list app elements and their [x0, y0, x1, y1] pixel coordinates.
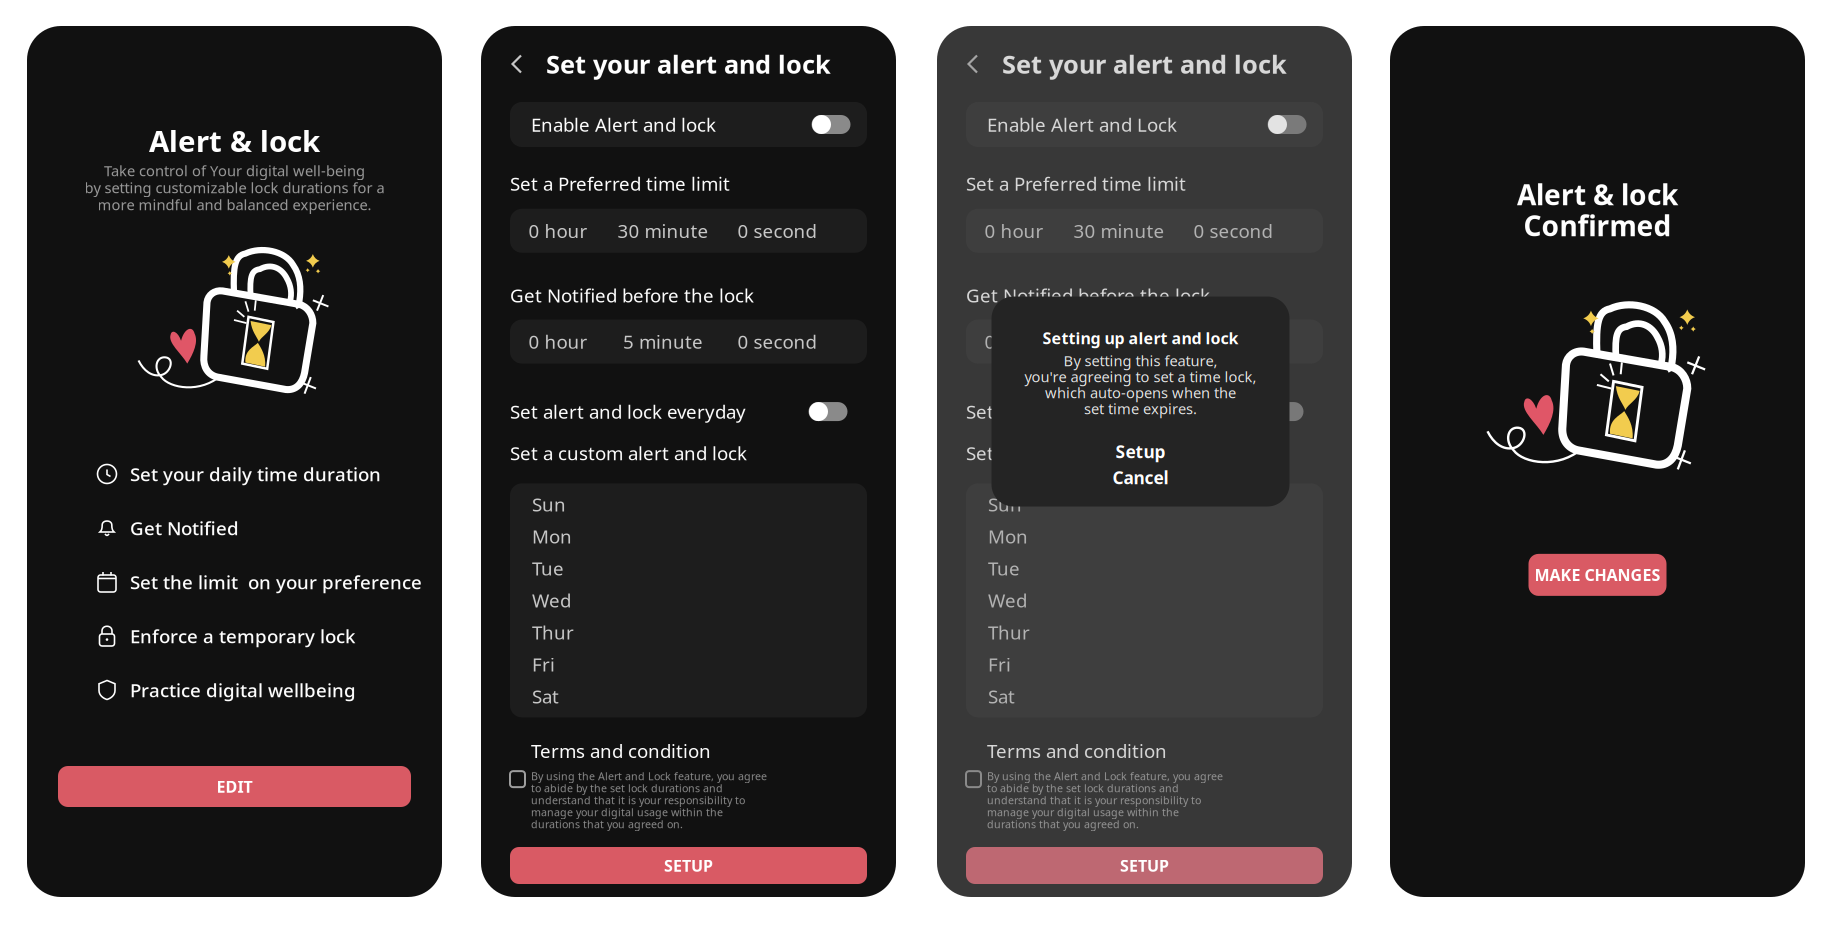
button[interactable]: Accept terms: [510, 770, 531, 787]
button[interactable]: Sun: [510, 488, 867, 520]
button[interactable]: Setup: [991, 440, 1289, 462]
staticText: By using the Alert and Lock feature, you…: [531, 769, 767, 783]
staticText: By setting this feature,: [1063, 351, 1217, 370]
staticText: by setting customizable lock durations f…: [84, 178, 384, 197]
staticText: Mon: [988, 524, 1028, 549]
staticText: Confirmed: [1523, 207, 1671, 244]
staticText: understand that it is your responsibilit…: [987, 793, 1201, 807]
staticText: Get Notified before the lock: [510, 283, 754, 308]
staticText: Tue: [988, 556, 1020, 581]
staticText: Thur: [988, 620, 1030, 645]
staticText: 0 hour: [528, 218, 587, 243]
staticText: SETUP: [1120, 855, 1169, 876]
staticText: Get Notified: [130, 516, 239, 540]
staticText: Take control of Your digital well-being: [104, 161, 365, 180]
staticText: 5 minute: [1079, 329, 1159, 354]
button[interactable]: Set the limit on your preference: [96, 555, 428, 609]
staticText: Practice digital wellbeing: [130, 678, 356, 702]
staticText: manage your digital usage within the: [987, 805, 1179, 819]
staticText: durations that you agreed on.: [987, 817, 1139, 831]
staticText: more mindful and balanced experience.: [97, 195, 371, 214]
staticText: Set a custom alert and lock: [510, 441, 747, 465]
staticText: Set alert and lock everyday: [510, 399, 746, 424]
button[interactable]: Wed: [966, 584, 1323, 616]
button[interactable]: Back: [956, 43, 989, 84]
staticText: manage your digital usage within the: [531, 805, 723, 819]
staticText: Mon: [532, 524, 572, 549]
button[interactable]: Tue: [966, 552, 1323, 584]
button[interactable]: Set your daily time duration: [96, 447, 428, 501]
staticText: Sun: [532, 492, 566, 517]
staticText: Enable Alert and Lock: [987, 112, 1177, 137]
staticText: Sun: [988, 492, 1022, 517]
staticText: Alert & lock: [1517, 176, 1678, 213]
staticText: Fri: [532, 652, 555, 677]
staticText: set time expires.: [1084, 399, 1197, 418]
staticText: 30 minute: [1073, 218, 1164, 243]
staticText: Set a custom alert and lock: [966, 441, 1203, 465]
button[interactable]: Practice digital wellbeing: [96, 663, 428, 717]
button[interactable]: Toggle: [803, 399, 853, 425]
button[interactable]: Get Notified: [96, 501, 428, 555]
button[interactable]: Cancel: [991, 466, 1289, 488]
staticText: Terms and condition: [531, 738, 711, 763]
staticText: Sat: [988, 684, 1015, 709]
staticText: Set your alert and lock: [1002, 47, 1287, 81]
staticText: 0 second: [737, 329, 816, 354]
staticText: Thur: [532, 620, 574, 645]
button[interactable]: MAKE CHANGES: [1528, 554, 1666, 596]
button[interactable]: EDIT: [58, 766, 411, 807]
staticText: 0 hour: [984, 329, 1043, 354]
staticText: 0 second: [1193, 218, 1272, 243]
button[interactable]: Thur: [510, 616, 867, 648]
button[interactable]: Tue: [510, 552, 867, 584]
button[interactable]: Toggle: [1262, 111, 1312, 137]
staticText: EDIT: [216, 776, 252, 797]
staticText: Sat: [532, 684, 559, 709]
staticText: 0 second: [737, 218, 816, 243]
staticText: Get Notified before the lock: [966, 283, 1210, 308]
staticText: Fri: [988, 652, 1011, 677]
staticText: 30 minute: [617, 218, 708, 243]
button[interactable]: Mon: [966, 520, 1323, 552]
staticText: which auto-opens when the: [1045, 383, 1236, 402]
staticText: Set a Preferred time limit: [510, 171, 730, 196]
button[interactable]: Back: [500, 43, 533, 84]
staticText: By using the Alert and Lock feature, you…: [987, 769, 1223, 783]
button[interactable]: SETUP: [966, 847, 1323, 884]
staticText: Enable Alert and lock: [531, 112, 716, 137]
staticText: Set the limit on your preference: [130, 570, 422, 594]
staticText: Wed: [532, 588, 571, 613]
button[interactable]: Accept terms: [966, 770, 987, 787]
staticText: 5 minute: [623, 329, 703, 354]
button[interactable]: Sat: [510, 680, 867, 712]
button[interactable]: Sun: [966, 488, 1323, 520]
button[interactable]: Toggle: [1259, 399, 1309, 425]
staticText: 0 hour: [528, 329, 587, 354]
staticText: Terms and condition: [987, 738, 1167, 763]
button[interactable]: Sat: [966, 680, 1323, 712]
staticText: Tue: [532, 556, 564, 581]
staticText: Set your alert and lock: [546, 47, 831, 81]
staticText: durations that you agreed on.: [531, 817, 683, 831]
staticText: to abide by the set lock durations and: [987, 781, 1179, 795]
staticText: to abide by the set lock durations and: [531, 781, 723, 795]
button[interactable]: Mon: [510, 520, 867, 552]
staticText: understand that it is your responsibilit…: [531, 793, 745, 807]
button[interactable]: Thur: [966, 616, 1323, 648]
staticText: you're agreeing to set a time lock,: [1024, 367, 1256, 386]
button[interactable]: Fri: [966, 648, 1323, 680]
button[interactable]: Enforce a temporary lock: [96, 609, 428, 663]
staticText: SETUP: [664, 855, 713, 876]
staticText: Wed: [988, 588, 1027, 613]
button[interactable]: SETUP: [510, 847, 867, 884]
button[interactable]: Toggle: [806, 111, 856, 137]
staticText: Cancel: [1112, 466, 1168, 489]
staticText: Set alert and lock everyday: [966, 399, 1202, 424]
staticText: 0 hour: [984, 218, 1043, 243]
staticText: Setting up alert and lock: [1042, 327, 1238, 349]
staticText: Set a Preferred time limit: [966, 171, 1186, 196]
button[interactable]: Wed: [510, 584, 867, 616]
button[interactable]: Fri: [510, 648, 867, 680]
staticText: Alert & lock: [149, 121, 320, 160]
